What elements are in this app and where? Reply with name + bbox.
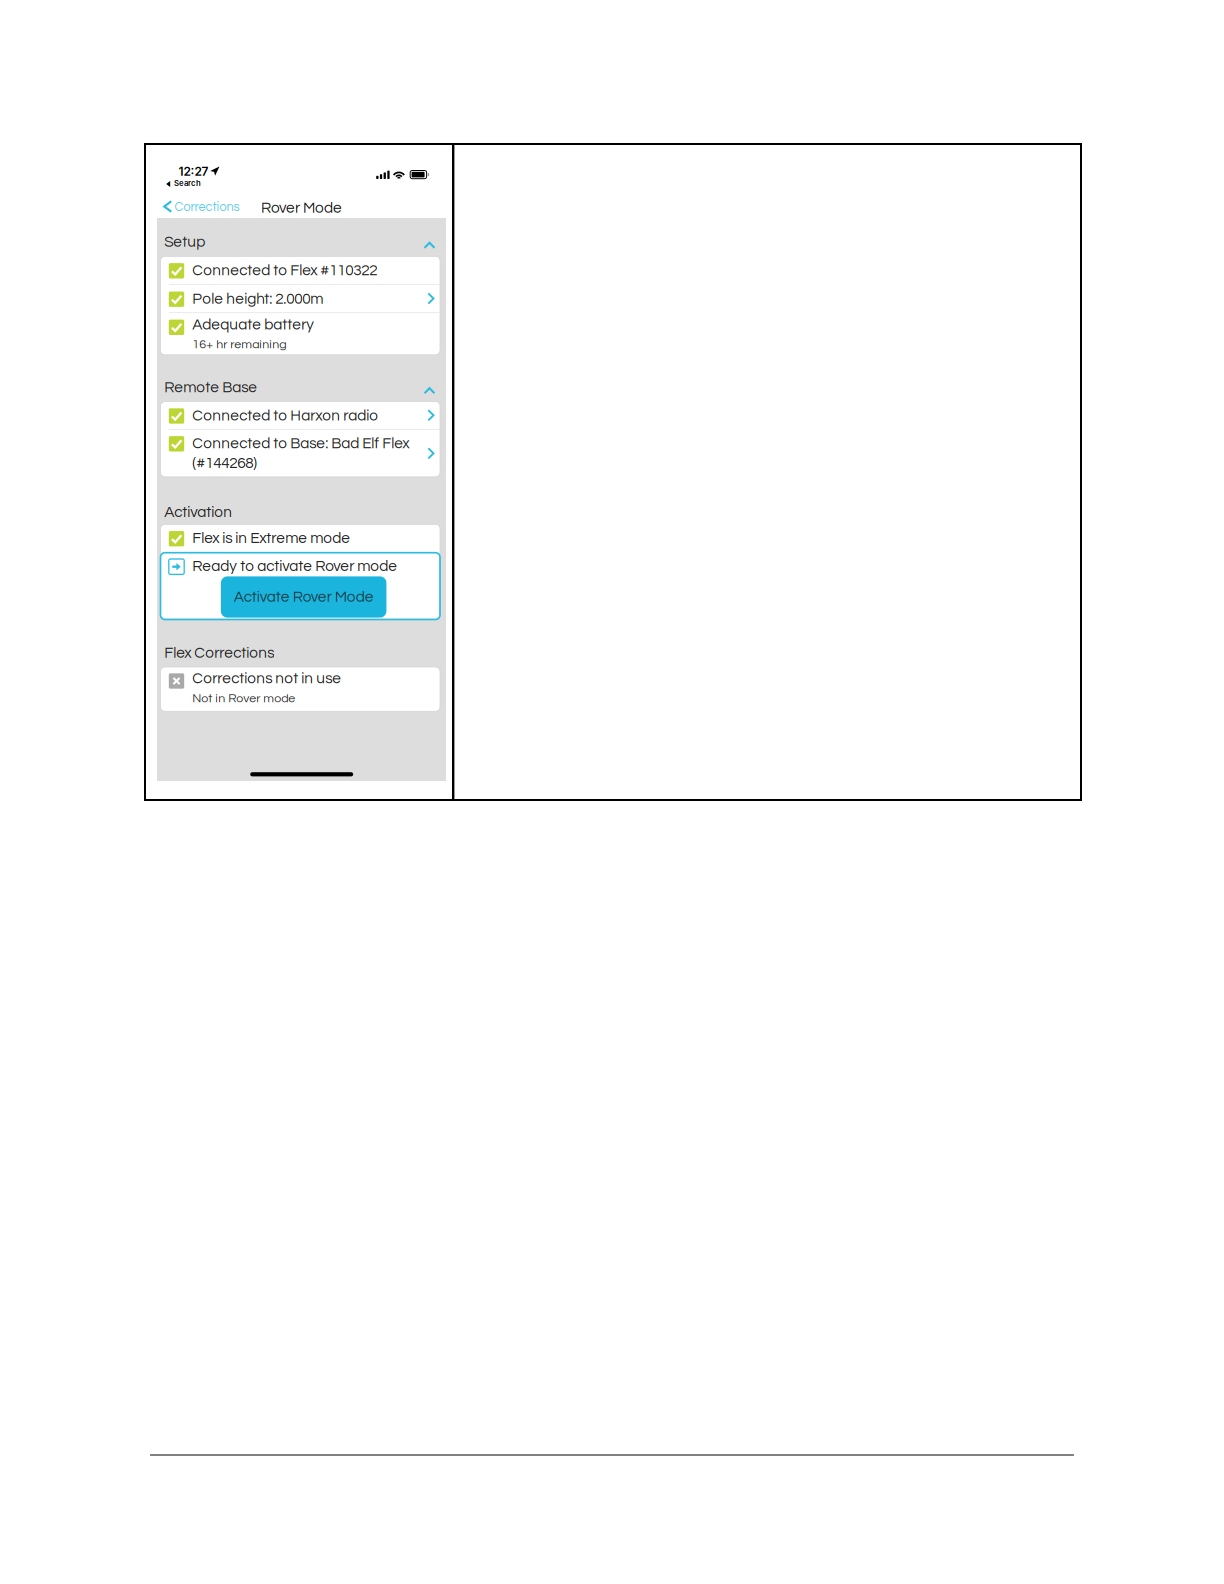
staticText: Connected to Flex #110322 bbox=[192, 263, 377, 279]
button[interactable]: Collapse Remote Base bbox=[416, 381, 442, 401]
staticText: Corrections bbox=[174, 201, 239, 214]
button[interactable]: Collapse Setup bbox=[416, 235, 442, 255]
staticText: Connected to Base: Bad Elf Flex bbox=[192, 436, 409, 452]
button[interactable]: Ready to activate Rover mode bbox=[160, 553, 440, 577]
button[interactable]: Corrections not in use bbox=[160, 667, 440, 711]
staticText: (#144268) bbox=[192, 455, 257, 471]
staticText: Ready to activate Rover mode bbox=[192, 558, 397, 574]
staticText: Flex is in Extreme mode bbox=[192, 530, 350, 546]
staticText: Connected to Harxon radio bbox=[192, 408, 378, 424]
staticText: Adequate battery bbox=[192, 317, 314, 333]
staticText: Corrections not in use bbox=[192, 671, 341, 687]
staticText: Setup bbox=[164, 234, 205, 250]
staticText: 12:27 bbox=[179, 164, 209, 178]
staticText: Activate Rover Mode bbox=[234, 589, 374, 605]
staticText: Pole height: 2.000m bbox=[192, 291, 323, 307]
button[interactable]: Connected to Base: Bad Elf Flex bbox=[160, 430, 440, 477]
button[interactable]: Flex is in Extreme mode bbox=[160, 524, 440, 552]
staticText: Rover Mode bbox=[261, 200, 342, 216]
staticText: Remote Base bbox=[164, 380, 257, 396]
button[interactable]: Corrections bbox=[162, 195, 244, 219]
staticText: Search bbox=[174, 178, 201, 188]
button[interactable]: Activate Rover Mode bbox=[221, 576, 386, 618]
staticText: Activation bbox=[164, 504, 232, 520]
staticText: Not in Rover mode bbox=[192, 692, 295, 705]
staticText: Flex Corrections bbox=[164, 645, 274, 661]
button[interactable]: Connected to Harxon radio bbox=[160, 402, 440, 429]
button[interactable]: Connected to Flex #110322 bbox=[160, 256, 440, 284]
button[interactable]: Adequate battery bbox=[160, 313, 440, 355]
button[interactable]: Pole height: 2.000m bbox=[160, 285, 440, 312]
staticText: 16+ hr remaining bbox=[192, 338, 286, 351]
